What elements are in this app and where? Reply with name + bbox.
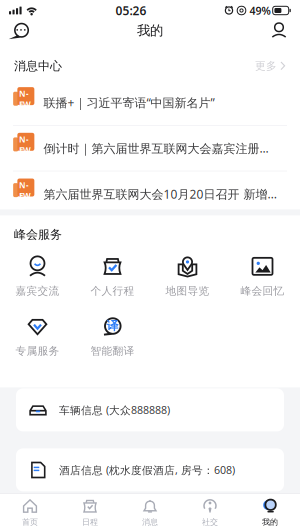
staticText: 联播+｜习近平寄语“中国新名片” [43, 94, 214, 110]
button[interactable]: 个人行程 [75, 253, 150, 299]
button[interactable]: 我的 [240, 494, 300, 530]
staticText: 我的 [137, 22, 163, 39]
button[interactable]: NEW [0, 126, 300, 171]
staticText: NEW [19, 180, 31, 201]
staticText: 嘉宾交流 [15, 284, 59, 297]
staticText: 05:26 [116, 2, 147, 18]
button[interactable]: 日程 [60, 494, 120, 530]
staticText: 消息中心 [14, 59, 62, 73]
staticText: 更多 [255, 59, 277, 72]
staticText: 我的 [262, 517, 278, 527]
button[interactable]: 译 [75, 313, 150, 359]
button[interactable]: NEW [0, 171, 300, 216]
staticText: 日程 [82, 517, 98, 527]
staticText: 峰会服务 [14, 227, 62, 242]
staticText: 专属服务 [15, 344, 59, 357]
button[interactable]: 社交 [180, 494, 240, 530]
staticText: 第六届世界互联网大会10月20日召开 新增“直… [43, 186, 278, 202]
button[interactable]: 专属服务 [0, 313, 75, 359]
staticText: 酒店信息 (枕水度假酒店, 房号：608) [59, 463, 235, 477]
staticText: 49% [249, 3, 270, 18]
button[interactable]: 车辆信息 (大众888888) [16, 388, 284, 431]
staticText: 社交 [202, 517, 218, 527]
staticText: 译 [106, 318, 118, 333]
button[interactable]: 酒店信息 (枕水度假酒店, 房号：608) [16, 448, 284, 491]
staticText: 车辆信息 (大众888888) [59, 403, 170, 417]
staticText: 地图导览 [165, 284, 209, 297]
staticText: NEW [19, 134, 31, 155]
button[interactable]: 消息 [120, 494, 180, 530]
button[interactable]: 嘉宾交流 [0, 253, 75, 299]
staticText: 个人行程 [90, 284, 134, 297]
staticText: 倒计时｜第六届世界互联网大会嘉宾注册看这… [43, 140, 278, 156]
button[interactable]: 首页 [0, 494, 60, 530]
button[interactable]: 更多 [255, 59, 286, 72]
staticText: 峰会回忆 [240, 284, 284, 297]
button[interactable]: Messages [6, 18, 36, 42]
button[interactable]: Profile [264, 18, 294, 42]
button[interactable]: 峰会回忆 [225, 253, 300, 299]
staticText: 首页 [22, 517, 38, 527]
button[interactable]: 地图导览 [150, 253, 225, 299]
staticText: NEW [19, 88, 31, 110]
button[interactable]: NEW [0, 80, 300, 125]
staticText: 智能翻译 [90, 344, 134, 357]
staticText: 消息 [142, 517, 158, 527]
